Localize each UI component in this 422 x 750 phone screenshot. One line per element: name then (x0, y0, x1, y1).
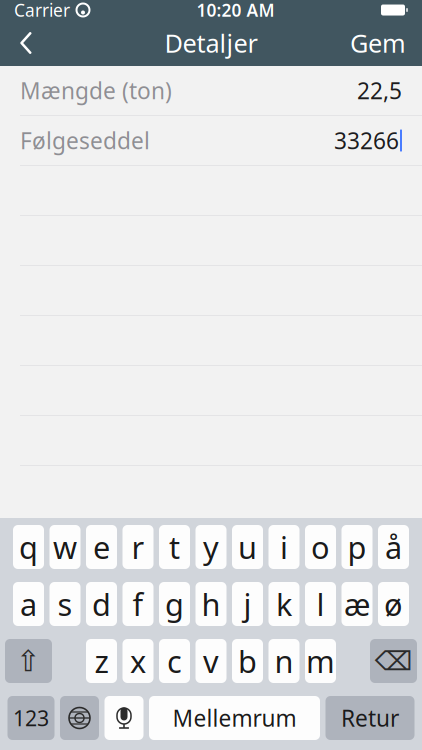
button[interactable]: Delete (370, 639, 417, 683)
button[interactable]: å (378, 525, 409, 569)
button[interactable]: æ (341, 582, 372, 626)
staticText: l (316, 584, 324, 624)
staticText: Mellemrum (172, 703, 296, 733)
button[interactable]: j (232, 582, 263, 626)
staticText: u (238, 527, 257, 567)
button[interactable]: Back (0, 21, 52, 65)
button[interactable]: b (232, 639, 263, 683)
button[interactable]: Dictate (104, 696, 143, 740)
staticText: ø (384, 584, 403, 624)
button[interactable]: Mellemrum (149, 696, 320, 740)
staticText: 10:20 AM (196, 0, 274, 21)
staticText: e (93, 527, 110, 567)
button[interactable]: o (305, 525, 336, 569)
button[interactable]: p (341, 525, 372, 569)
staticText: ⇧ (16, 644, 41, 678)
button[interactable]: d (86, 582, 117, 626)
staticText: Retur (341, 703, 399, 733)
staticText: i (280, 527, 288, 567)
button[interactable]: k (268, 582, 299, 626)
staticText: h (201, 584, 220, 624)
button[interactable]: a (13, 582, 44, 626)
staticText: 123 (13, 704, 49, 732)
staticText: a (20, 584, 37, 624)
staticText: æ (344, 584, 370, 624)
button[interactable]: u (232, 525, 263, 569)
staticText: Carrier (14, 0, 70, 21)
staticText: w (53, 527, 77, 567)
button[interactable]: n (268, 639, 299, 683)
staticText: ⌫ (374, 646, 412, 676)
staticText: n (274, 641, 293, 681)
staticText: r (131, 527, 144, 567)
staticText: b (238, 641, 257, 681)
staticText: Mængde (ton) (20, 75, 172, 105)
staticText: t (169, 527, 180, 567)
button[interactable]: ø (378, 582, 409, 626)
button[interactable]: q (13, 525, 44, 569)
button[interactable]: t (159, 525, 190, 569)
staticText: s (57, 584, 72, 624)
button[interactable]: i (268, 525, 299, 569)
button[interactable]: Retur (325, 696, 414, 740)
staticText: Gem (350, 26, 406, 60)
button[interactable]: l (305, 582, 336, 626)
staticText: q (19, 527, 38, 567)
staticText: Detaljer (164, 26, 257, 60)
button[interactable]: Next keyboard (60, 696, 99, 740)
staticText: m (306, 641, 335, 681)
staticText: å (385, 527, 402, 567)
button[interactable]: Mængde (ton) (0, 66, 422, 115)
button[interactable]: Shift (5, 639, 52, 683)
staticText: x (130, 641, 146, 681)
button[interactable]: g (159, 582, 190, 626)
button[interactable]: s (49, 582, 80, 626)
staticText: d (92, 584, 111, 624)
button[interactable]: Gem (334, 21, 422, 65)
button[interactable]: h (195, 582, 226, 626)
button[interactable]: v (195, 639, 226, 683)
staticText: c (167, 641, 182, 681)
button[interactable]: c (159, 639, 190, 683)
button[interactable]: e (86, 525, 117, 569)
staticText: f (132, 584, 143, 624)
staticText: j (243, 584, 251, 624)
button[interactable]: f (122, 582, 153, 626)
button[interactable]: m (305, 639, 336, 683)
button[interactable]: x (122, 639, 153, 683)
staticText: z (94, 641, 108, 681)
button[interactable]: Følgeseddel (0, 116, 422, 165)
staticText: Følgeseddel (20, 125, 150, 155)
staticText: p (347, 527, 366, 567)
button[interactable]: 123 (7, 696, 54, 740)
button[interactable]: r (122, 525, 153, 569)
staticText: o (311, 527, 330, 567)
button[interactable]: y (195, 525, 226, 569)
button[interactable]: w (49, 525, 80, 569)
staticText: 33266 (334, 125, 399, 155)
staticText: 22,5 (357, 75, 402, 105)
staticText: g (165, 584, 184, 624)
staticText: v (203, 641, 219, 681)
button[interactable]: z (86, 639, 117, 683)
staticText: k (276, 584, 292, 624)
staticText: y (203, 527, 219, 567)
